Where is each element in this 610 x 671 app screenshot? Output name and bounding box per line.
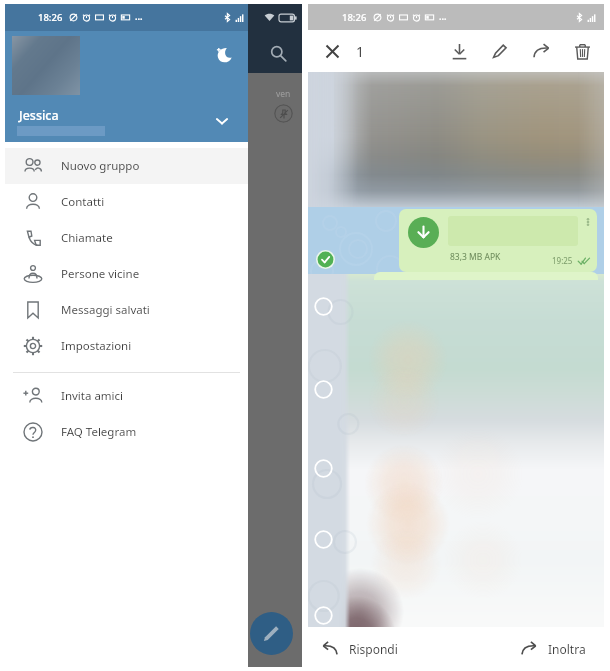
button[interactable]: Select message (314, 606, 333, 625)
button[interactable]: Chiamate (5, 220, 248, 256)
button[interactable]: Rispondi (322, 641, 398, 657)
button[interactable]: Invita amici (5, 378, 248, 414)
staticText: ··· (439, 12, 447, 24)
button[interactable]: Select message (314, 380, 333, 399)
staticText: Nuovo gruppo (61, 158, 140, 174)
staticText: 1 (356, 42, 365, 61)
button[interactable]: Search (264, 39, 292, 67)
button[interactable]: Download (442, 34, 476, 68)
staticText: 83,3 MB APK (450, 251, 501, 263)
button[interactable]: Select message (314, 530, 333, 549)
button[interactable]: Nuovo gruppo (5, 148, 248, 184)
button[interactable]: Expand accounts (209, 108, 235, 134)
button[interactable]: Delete (565, 34, 599, 68)
staticText: Persone vicine (61, 266, 140, 282)
staticText: FAQ Telegram (61, 424, 137, 440)
staticText: Chiamate (61, 230, 113, 246)
button[interactable]: Contatti (5, 184, 248, 220)
staticText: Inoltra (548, 641, 586, 657)
staticText: ven (276, 88, 291, 100)
staticText: Impostazioni (61, 338, 132, 354)
staticText: ··· (135, 12, 143, 24)
staticText: 18:26 (38, 11, 63, 24)
button[interactable]: Messaggi salvati (5, 292, 248, 328)
button[interactable]: Inoltra (521, 641, 586, 657)
button[interactable]: Select message (314, 459, 333, 478)
staticText: 19:25 (552, 255, 573, 266)
button[interactable]: FAQ Telegram (5, 414, 248, 450)
button[interactable]: Select message (314, 297, 333, 316)
staticText: Messaggi salvati (61, 302, 150, 318)
staticText: 18:26 (342, 11, 367, 24)
button[interactable]: New message (250, 612, 293, 655)
staticText: Contatti (61, 194, 105, 210)
button[interactable]: Persone vicine (5, 256, 248, 292)
staticText: Rispondi (349, 641, 398, 657)
button[interactable]: Impostazioni (5, 328, 248, 364)
button[interactable]: Download file (408, 217, 439, 248)
button[interactable]: Selected (316, 250, 335, 269)
button[interactable]: Edit (483, 34, 517, 68)
staticText: Jessica (19, 107, 59, 124)
button[interactable]: Night mode (211, 42, 237, 68)
button[interactable]: Close (317, 36, 347, 66)
button[interactable]: Forward (524, 34, 558, 68)
button[interactable]: Download file (399, 209, 597, 272)
staticText: Invita amici (61, 388, 124, 404)
